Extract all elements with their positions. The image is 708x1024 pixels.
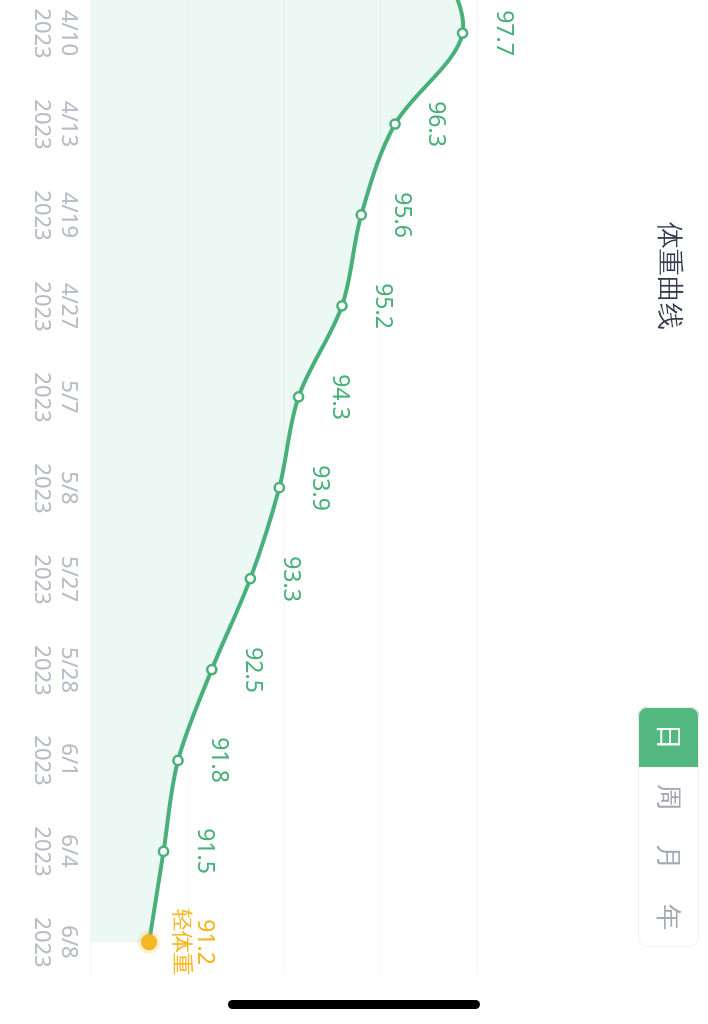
button[interactable]: 日 [638,707,699,767]
staticText: 2023 [29,735,59,786]
staticText: 5/27 [56,556,86,602]
staticText: 2023 [29,554,59,605]
staticText: 91.8 [207,737,237,783]
other: 体重曲线图表 [0,0,708,1024]
staticText: 年 [652,904,685,930]
staticText: 93.9 [308,465,338,511]
staticText: 5/7 [56,380,86,414]
staticText: 2023 [29,917,59,968]
staticText: 6/4 [56,834,86,868]
staticText: 4/13 [56,101,86,147]
staticText: 体重曲线 [653,222,687,330]
staticText: 2023 [29,99,59,150]
staticText: 月 [652,844,685,870]
staticText: 96.3 [424,101,454,147]
staticText: 91.2 [193,919,223,965]
staticText: 轻体重 [168,909,196,975]
staticText: 97.7 [492,10,522,56]
staticText: 95.2 [371,283,401,329]
staticText: 2023 [29,190,59,241]
button[interactable]: 周 [638,767,699,827]
staticText: 5/8 [56,471,86,505]
staticText: 92.5 [241,647,271,693]
staticText: 93.3 [279,556,309,602]
staticText: 2023 [29,372,59,423]
staticText: 2023 [29,826,59,877]
staticText: 2023 [29,463,59,514]
staticText: 2023 [29,8,59,59]
staticText: 4/27 [56,283,86,329]
staticText: 日 [652,724,685,750]
staticText: 91.5 [193,828,223,874]
staticText: 2023 [29,281,59,332]
staticText: 4/10 [56,10,86,56]
button[interactable]: 年 [638,887,699,947]
staticText: 周 [652,784,685,810]
staticText: 95.6 [390,192,420,238]
staticText: 2023 [29,645,59,696]
staticText: 4/19 [56,192,86,238]
staticText: 5/28 [56,647,86,693]
staticText: 6/8 [56,925,86,959]
button[interactable]: 月 [638,827,699,887]
staticText: 6/1 [56,743,86,777]
staticText: 94.3 [328,374,358,420]
